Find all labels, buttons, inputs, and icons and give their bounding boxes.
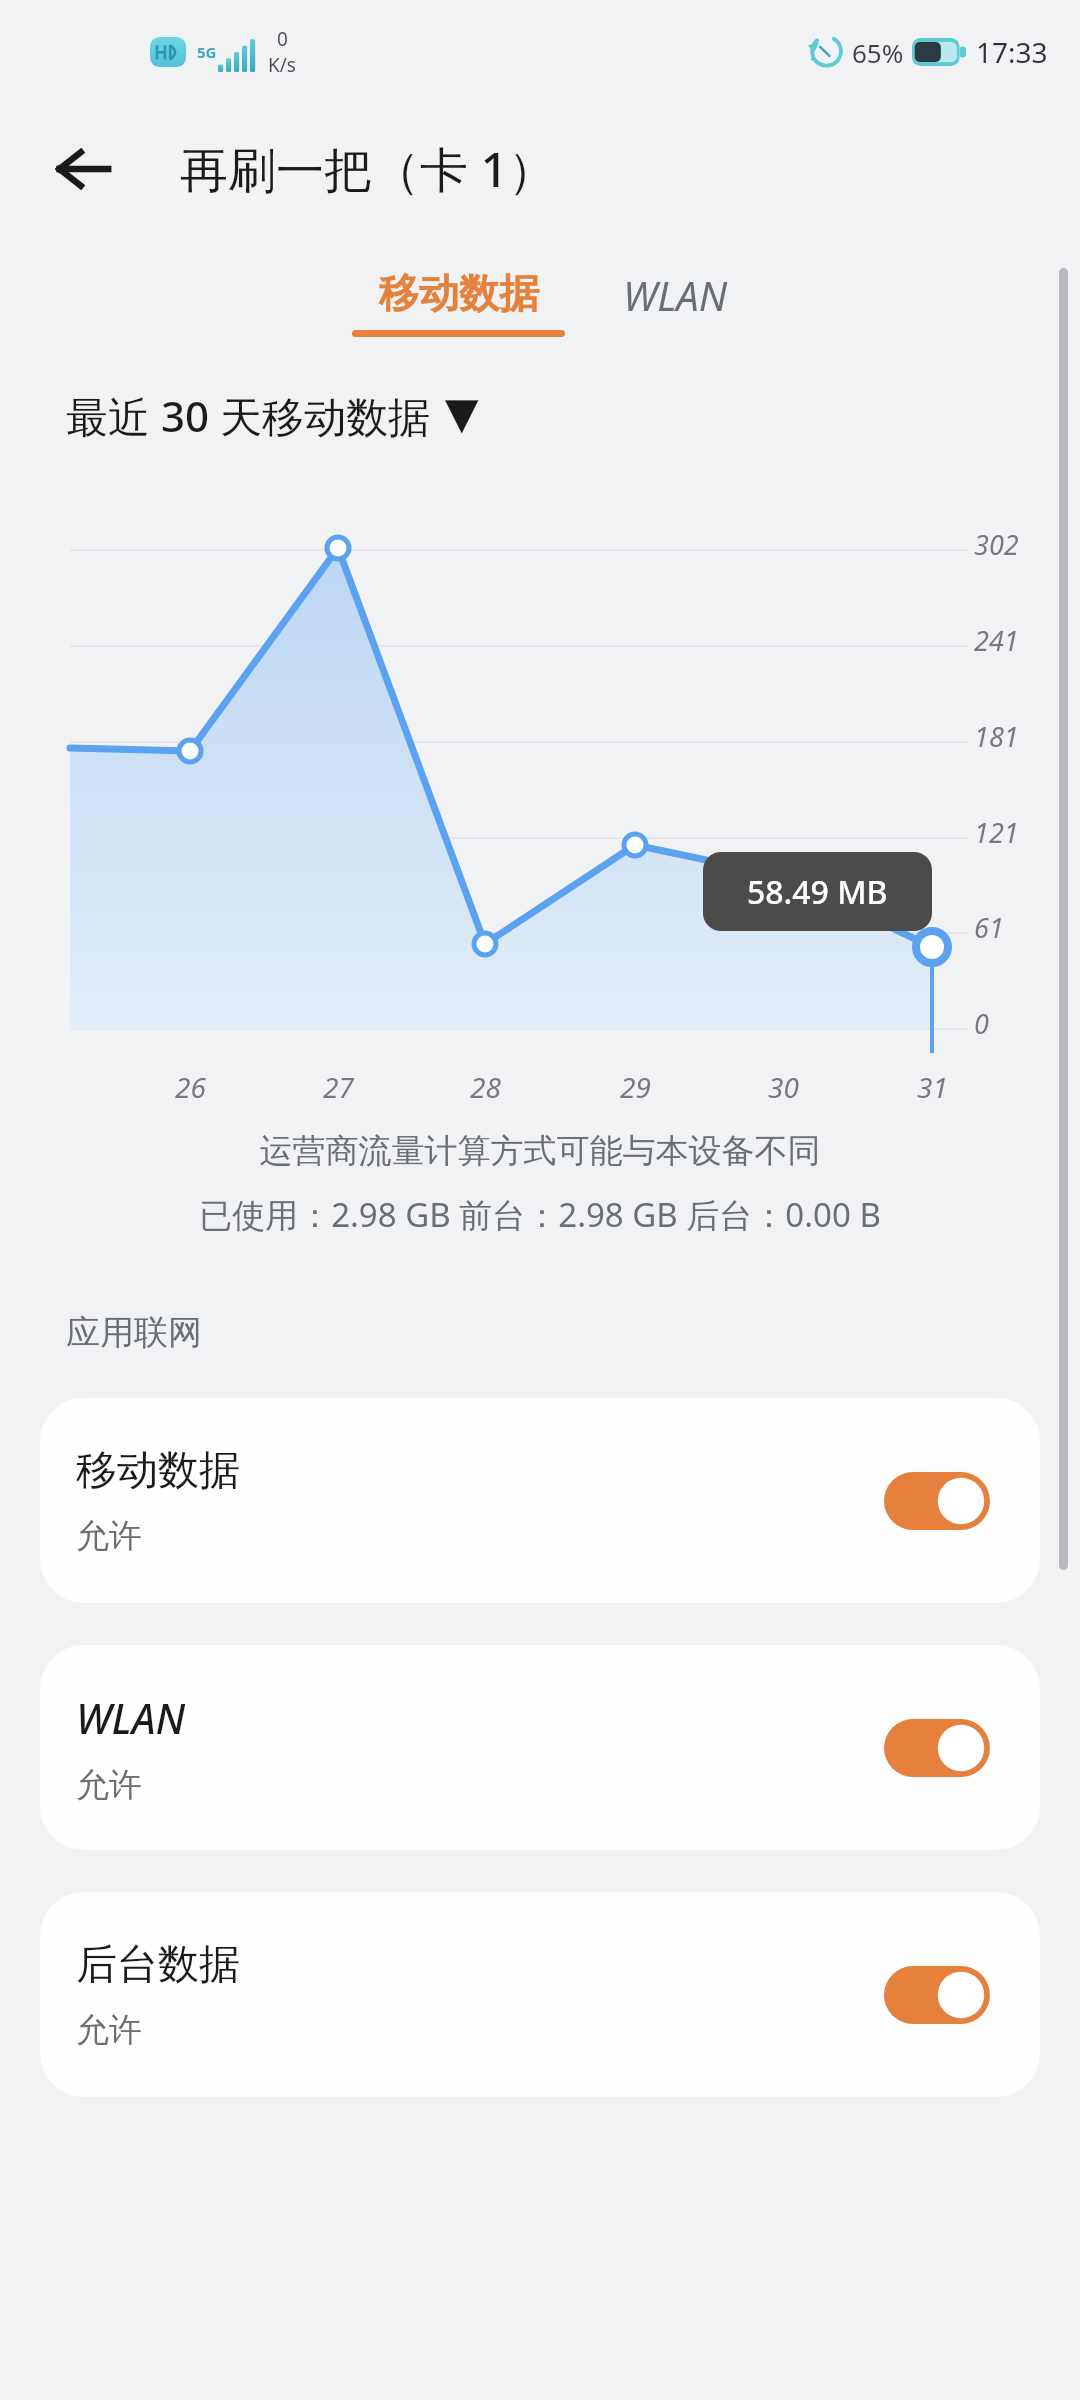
button[interactable]: WLAN (611, 268, 740, 322)
button[interactable]: 移动数据 (340, 268, 577, 337)
button[interactable]: 后台数据 (40, 1892, 1040, 2097)
staticText: 5G (197, 42, 217, 62)
button[interactable]: WLAN (40, 1645, 1040, 1850)
staticText: 运营商流量计算方式可能与本设备不同 (0, 1130, 1080, 1172)
staticText: 58.49 MB (747, 870, 888, 914)
staticText: 27 (323, 1068, 354, 1106)
staticText: 29 (620, 1068, 651, 1106)
staticText: 0 (974, 1005, 989, 1042)
staticText: 17:33 (976, 33, 1048, 71)
staticText: WLAN (623, 268, 728, 322)
staticText: 121 (974, 814, 1019, 851)
staticText: 302 (974, 526, 1019, 563)
staticText: 移动数据 (379, 268, 539, 318)
staticText: WLAN (76, 1690, 186, 1746)
button[interactable]: Back (40, 126, 126, 212)
staticText: 26 (175, 1068, 206, 1106)
button[interactable]: Toggle 移动数据 (884, 1472, 990, 1530)
staticText: 0 (277, 26, 288, 52)
staticText: 已使用：2.98 GB 前台：2.98 GB 后台：0.00 B (0, 1192, 1080, 1237)
staticText: 61 (974, 909, 1004, 946)
staticText: 31 (917, 1068, 948, 1106)
staticText: 应用联网 (66, 1311, 202, 1354)
button[interactable]: 最近 30 天移动数据 ▼ (66, 387, 483, 444)
staticText: 后台数据 (76, 1939, 240, 1991)
button[interactable]: Toggle 后台数据 (884, 1966, 990, 2024)
staticText: 允许 (76, 1764, 142, 1806)
staticText: 再刷一把（卡 1） (180, 136, 556, 202)
staticText: 30 (768, 1068, 799, 1106)
staticText: 允许 (76, 1515, 142, 1557)
staticText: K/s (268, 52, 296, 78)
staticText: 65% (852, 35, 904, 70)
button[interactable]: 移动数据 (40, 1398, 1040, 1603)
staticText: 移动数据 (76, 1445, 240, 1497)
button[interactable]: Toggle WLAN (884, 1719, 990, 1777)
staticText: 241 (974, 622, 1019, 659)
staticText: 允许 (76, 2009, 142, 2051)
staticText: 28 (470, 1068, 501, 1106)
staticText: 181 (974, 718, 1019, 755)
